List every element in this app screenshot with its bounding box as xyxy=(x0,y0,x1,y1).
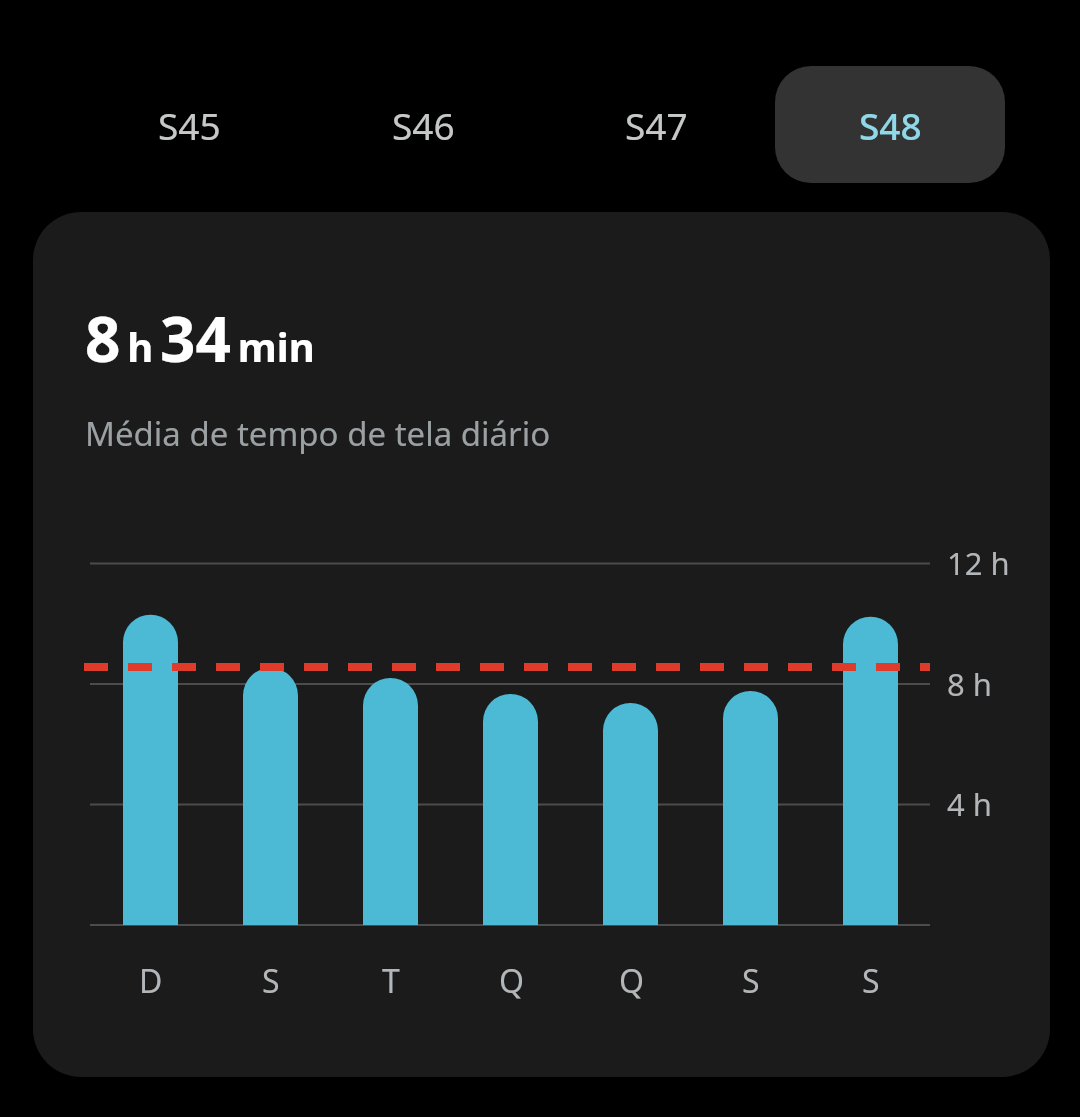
staticText: Q xyxy=(619,959,644,1003)
button[interactable]: S48 xyxy=(775,66,1005,183)
button[interactable]: 8 h 34 min xyxy=(33,212,1050,1077)
staticText: 12 h xyxy=(947,542,1010,584)
staticText: Q xyxy=(499,959,524,1003)
button[interactable]: S47 xyxy=(556,66,756,183)
staticText: S45 xyxy=(158,100,221,150)
staticText: S46 xyxy=(392,100,455,150)
staticText: D xyxy=(139,959,163,1003)
staticText: 8 h 34 min xyxy=(85,296,315,380)
staticText: S xyxy=(262,959,280,1003)
staticText: T xyxy=(382,959,400,1003)
staticText: S48 xyxy=(859,100,922,150)
staticText: 4 h xyxy=(947,783,992,825)
staticText: S xyxy=(742,959,760,1003)
staticText: S xyxy=(862,959,880,1003)
staticText: Média de tempo de tela diário xyxy=(85,411,551,456)
button[interactable]: S46 xyxy=(323,66,523,183)
button[interactable]: S45 xyxy=(89,66,289,183)
staticText: 8 h xyxy=(947,663,992,705)
staticText: S47 xyxy=(625,100,688,150)
